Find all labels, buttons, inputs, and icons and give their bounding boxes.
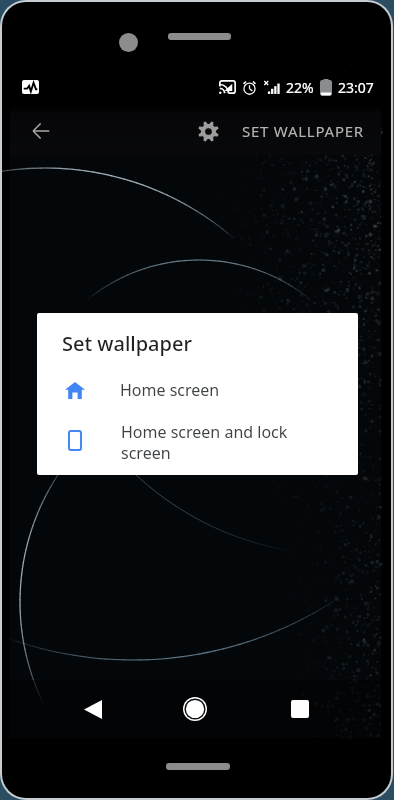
button[interactable]: Recent apps [278, 687, 322, 731]
staticText: Home screen and lock screen [121, 421, 288, 464]
button[interactable]: Home [173, 687, 217, 731]
button[interactable]: Back [71, 687, 115, 731]
staticText: Set wallpaper [62, 330, 192, 357]
staticText: 23:07 [338, 78, 374, 97]
button[interactable]: Home screen [37, 369, 358, 411]
staticText: Home screen [120, 379, 220, 401]
button[interactable]: Home screen and lock screen [37, 413, 358, 475]
staticText: SET WALLPAPER [242, 121, 364, 141]
button[interactable]: Back [17, 107, 65, 155]
staticText: 22% [286, 78, 314, 97]
button[interactable]: SET WALLPAPER [190, 107, 380, 155]
